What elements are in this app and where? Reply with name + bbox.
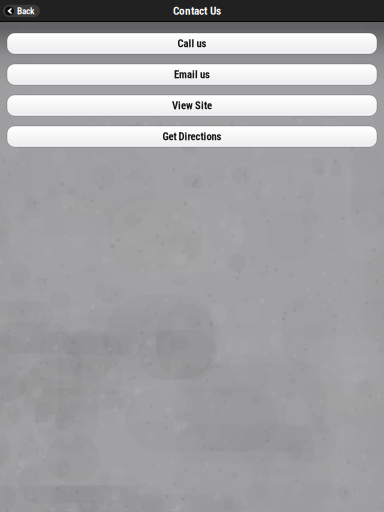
button[interactable]: Email us — [7, 64, 377, 85]
staticText: Email us — [174, 68, 210, 81]
staticText: Call us — [177, 37, 206, 50]
button[interactable]: Call us — [7, 33, 377, 54]
staticText: Get Directions — [162, 130, 221, 143]
button[interactable]: Back — [3, 5, 40, 17]
staticText: View Site — [172, 99, 212, 112]
staticText: Contact Us — [173, 4, 221, 18]
button[interactable]: Get Directions — [7, 126, 377, 147]
button[interactable]: View Site — [7, 95, 377, 116]
staticText: Back — [17, 5, 34, 16]
